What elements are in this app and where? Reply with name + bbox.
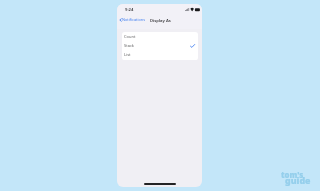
staticText: Stack [124,43,134,48]
staticText: Notifications [122,17,146,22]
staticText: 9:24 [125,7,134,13]
button[interactable]: Back to Notifications [118,16,147,23]
other: Selected [190,44,195,48]
staticText: Count [124,34,136,39]
button[interactable]: List [122,50,198,59]
staticText: tom's [281,170,304,181]
button[interactable]: Count [122,32,198,41]
button[interactable]: Stack [122,41,198,50]
staticText: Display As [150,18,171,24]
staticText: guide [285,175,311,187]
staticText: List [124,52,131,57]
